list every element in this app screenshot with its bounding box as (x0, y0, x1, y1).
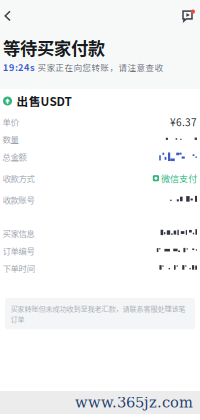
staticText: 订单编号 (2, 245, 34, 257)
staticText: 下单时间 (2, 262, 34, 274)
staticText: ¥6.37 (170, 114, 197, 129)
staticText: 19:24s (3, 60, 35, 74)
button[interactable]: Back (1, 3, 15, 29)
staticText: 买家正在向您转账，请注意查收 (37, 61, 163, 74)
staticText: 等待买家付款 (3, 35, 105, 60)
staticText: 收款方式 (2, 172, 34, 184)
staticText: 微信支付 (161, 172, 197, 185)
staticText: 出售USDT (16, 92, 71, 109)
staticText: 买家信息 (2, 227, 34, 239)
staticText: 单价 (2, 116, 18, 128)
staticText: 收款账号 (2, 194, 34, 206)
staticText: www.365jz.com (75, 394, 193, 411)
staticText: 买家转账但未成功收到至我老汇款，请联系客服处理该笔订单 (10, 303, 185, 324)
staticText: 总金额 (2, 151, 26, 163)
button[interactable]: Messages (179, 3, 197, 29)
staticText: 数量 (2, 133, 18, 145)
